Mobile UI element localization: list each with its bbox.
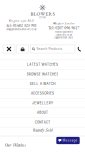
staticText: Tel: 0207 096 9617: [48, 25, 79, 31]
staticText: BLOWERS: [30, 10, 54, 17]
staticText: shop@blowersjewellers.co.uk: [6, 28, 36, 31]
staticText: JEWELLERY: [32, 101, 53, 105]
staticText: mayfair@blowers: [55, 31, 73, 33]
button[interactable]: ABOUT: [0, 108, 85, 117]
button[interactable]: ACCESSORIES: [0, 88, 85, 98]
button[interactable]: Message: [56, 137, 80, 144]
staticText: Mayfair London: [53, 21, 75, 25]
staticText: Kingston upon Hull: [9, 18, 34, 22]
button[interactable]: Close: [3, 45, 15, 53]
staticText: LATEST WATCHES: [27, 63, 58, 66]
staticText: Recently Sold: [32, 127, 52, 133]
button[interactable]: Bag: [17, 45, 29, 53]
button[interactable]: JEWELLERY: [0, 98, 85, 108]
staticText: Search Products: [36, 47, 62, 51]
staticText: CONTACT: [35, 120, 50, 124]
staticText: ACCESSORIES: [31, 92, 54, 95]
staticText: BROWSE WATCHES: [27, 72, 58, 76]
button[interactable]: SELL A WATCH: [0, 79, 85, 88]
staticText: SELL A WATCH: [30, 82, 55, 86]
staticText: jewellers.co.uk: [56, 33, 72, 36]
button[interactable]: LATEST WATCHES: [0, 60, 85, 69]
staticText: ABOUT: [37, 111, 48, 114]
button[interactable]: CONTACT: [0, 117, 85, 127]
staticText: Our Watches: [4, 142, 25, 148]
staticText: (appointment only): [54, 36, 73, 39]
button[interactable]: BROWSE WATCHES: [0, 69, 85, 79]
staticText: Message: [62, 139, 77, 142]
staticText: Tel: 01482 323 901: [6, 22, 37, 28]
button[interactable]: Search Products: [30, 45, 75, 53]
button[interactable]: Call: [76, 45, 82, 53]
staticText: EST. 1989: [39, 17, 46, 19]
